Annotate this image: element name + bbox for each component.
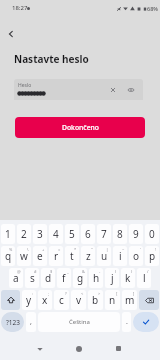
button[interactable]: v — [71, 290, 86, 310]
button[interactable]: 1 — [1, 224, 15, 244]
staticText: @ — [17, 269, 21, 274]
button[interactable]: m — [122, 290, 137, 310]
button[interactable]: 5 — [65, 224, 79, 244]
button[interactable]: Čeština — [38, 312, 120, 332]
button[interactable]: x — [38, 290, 52, 310]
button[interactable]: r — [49, 246, 63, 266]
staticText: 6 — [85, 227, 91, 241]
staticText: > — [98, 291, 101, 296]
button[interactable]: Home — [67, 337, 91, 360]
button[interactable]: Recents — [106, 337, 130, 360]
staticText: t — [70, 249, 74, 263]
button[interactable]: s — [25, 268, 39, 288]
button[interactable]: c — [54, 290, 69, 310]
staticText: ( — [115, 269, 117, 274]
staticText: Nastavte heslo — [14, 52, 89, 66]
staticText: , — [30, 317, 32, 327]
button[interactable]: i — [113, 246, 127, 266]
button[interactable]: k — [121, 268, 135, 288]
button[interactable]: Symbols — [1, 312, 24, 332]
staticText: 18:27 — [12, 4, 28, 12]
button[interactable]: u — [97, 246, 111, 266]
button[interactable]: 9 — [129, 224, 143, 244]
button[interactable]: y — [22, 290, 36, 310]
staticText: - — [99, 269, 101, 274]
button[interactable]: Backspace — [139, 290, 159, 310]
staticText: ] — [133, 291, 135, 296]
staticText: 2 — [21, 227, 27, 241]
button[interactable]: f — [57, 268, 71, 288]
button[interactable]: , — [26, 312, 36, 332]
button[interactable]: 4 — [49, 224, 63, 244]
staticText: q — [5, 249, 12, 263]
staticText: 7 — [101, 227, 107, 241]
staticText: Heslo — [18, 82, 32, 89]
staticText: \ — [27, 247, 29, 252]
staticText: d — [45, 271, 52, 285]
staticText: i — [119, 249, 122, 263]
staticText: " — [91, 247, 93, 252]
button[interactable]: w — [17, 246, 31, 266]
button[interactable]: 2 — [17, 224, 31, 244]
staticText: Čeština — [69, 318, 90, 326]
button[interactable]: l — [137, 268, 151, 288]
button[interactable]: a — [9, 268, 23, 288]
staticText: e — [37, 249, 43, 263]
staticText: z — [86, 249, 91, 263]
staticText: l — [143, 271, 146, 285]
button[interactable]: Back — [5, 28, 17, 40]
button[interactable]: q — [1, 246, 15, 266]
staticText: . — [126, 317, 128, 327]
button[interactable]: 0 — [145, 224, 159, 244]
button[interactable]: j — [105, 268, 119, 288]
staticText: # — [34, 269, 37, 274]
button[interactable]: 8 — [113, 224, 127, 244]
staticText: | — [106, 247, 109, 252]
staticText: ! — [155, 247, 157, 252]
staticText: : — [32, 291, 34, 296]
staticText: a — [13, 271, 19, 285]
staticText: b — [92, 293, 99, 307]
staticText: % — [9, 247, 13, 252]
staticText: 1 — [5, 227, 11, 241]
staticText: o — [133, 249, 140, 263]
button[interactable]: p — [145, 246, 159, 266]
button[interactable]: e — [33, 246, 47, 266]
button[interactable]: Back — [28, 337, 52, 360]
staticText: ; — [48, 291, 50, 296]
button[interactable]: b — [88, 290, 103, 310]
button[interactable]: Enter — [133, 312, 159, 332]
staticText: * — [74, 247, 77, 252]
button[interactable]: o — [129, 246, 143, 266]
button[interactable]: n — [105, 290, 120, 310]
staticText: < — [81, 291, 84, 296]
button[interactable]: Dokončeno — [15, 117, 145, 138]
staticText: w — [20, 249, 28, 263]
staticText: ~ — [122, 247, 125, 252]
button[interactable]: Heslo — [14, 79, 143, 100]
button[interactable]: d — [41, 268, 55, 288]
button[interactable]: z — [81, 246, 95, 266]
staticText: r — [54, 249, 59, 263]
staticText: v — [76, 293, 82, 307]
button[interactable]: . — [122, 312, 131, 332]
button[interactable]: 6 — [81, 224, 95, 244]
staticText: 0 — [149, 227, 155, 241]
button[interactable]: Shift — [1, 290, 20, 310]
staticText: 4 — [53, 227, 59, 241]
button[interactable]: 3 — [33, 224, 47, 244]
button[interactable]: h — [89, 268, 103, 288]
staticText: k — [125, 271, 131, 285]
button[interactable]: g — [73, 268, 87, 288]
staticText: $ — [50, 269, 53, 274]
staticText: 3 — [37, 227, 43, 241]
staticText: u — [101, 249, 108, 263]
staticText: 8 — [117, 227, 123, 241]
staticText: j — [111, 271, 114, 285]
staticText: = — [58, 247, 61, 252]
button[interactable]: Clear — [108, 85, 118, 95]
button[interactable]: 7 — [97, 224, 111, 244]
button[interactable]: t — [65, 246, 79, 266]
button[interactable]: Show password — [126, 85, 136, 95]
staticText: 5 — [69, 227, 75, 241]
